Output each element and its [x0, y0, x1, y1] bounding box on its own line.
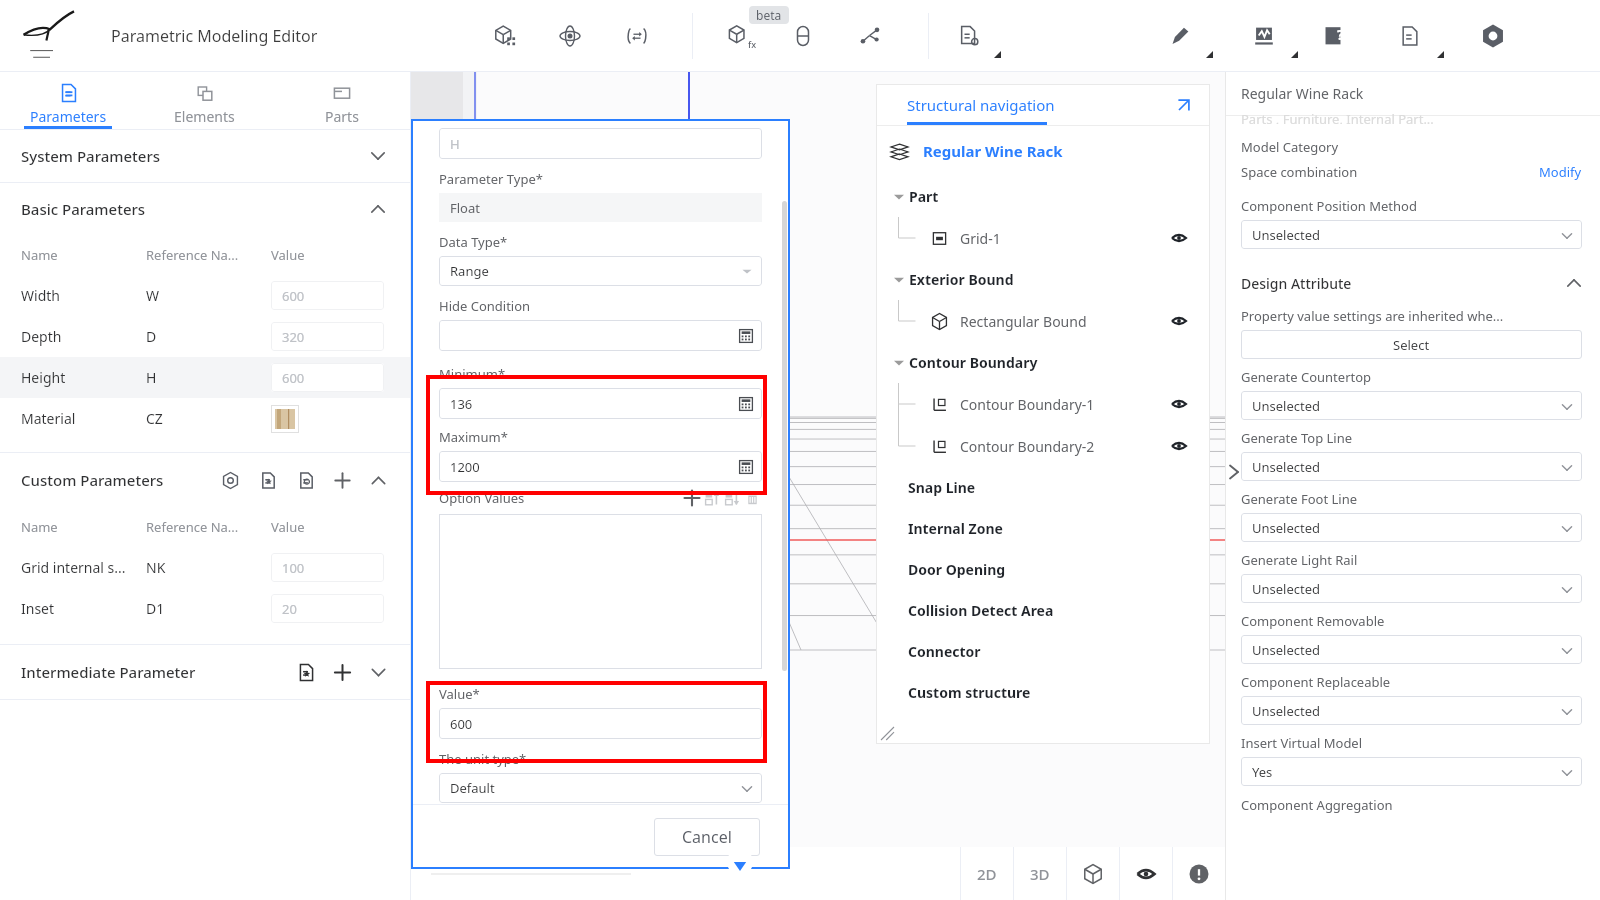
staticText: Parametric Modeling Editor — [111, 25, 318, 47]
button[interactable]: 600 — [271, 281, 384, 310]
button[interactable]: Move down — [722, 488, 742, 508]
button[interactable]: Unselected — [1241, 574, 1582, 603]
button[interactable]: Connector — [876, 631, 1210, 672]
button[interactable]: Parts — [273, 72, 410, 129]
button[interactable]: Add option — [682, 488, 702, 508]
staticText: Name — [21, 518, 146, 536]
button[interactable]: Add — [329, 659, 355, 685]
button[interactable]: Yes — [1241, 757, 1582, 786]
staticText: ? — [1337, 25, 1344, 44]
button[interactable]: Link — [785, 18, 821, 54]
button[interactable]: Depth — [0, 316, 410, 357]
button[interactable]: Grid-1 — [876, 217, 1210, 259]
button[interactable]: 100 — [271, 553, 384, 582]
button[interactable]: Elements — [136, 72, 273, 129]
button[interactable]: Exterior Bound — [876, 259, 1210, 300]
button[interactable]: Unselected — [1241, 220, 1582, 249]
button[interactable]: Model — [1067, 847, 1119, 900]
button[interactable]: 600 — [271, 363, 384, 392]
button[interactable]: Contour Boundary — [876, 342, 1210, 383]
button[interactable]: Width — [0, 275, 410, 316]
button[interactable]: Unselected — [1241, 391, 1582, 420]
button[interactable]: Custom structure — [876, 672, 1210, 713]
button[interactable]: Collapse — [365, 467, 391, 493]
button[interactable]: Default — [439, 773, 762, 803]
button[interactable]: Add star parameter — [255, 467, 281, 493]
button[interactable]: Graph — [852, 18, 888, 54]
button[interactable]: Unselected — [1241, 696, 1582, 725]
button[interactable]: Analytics — [1246, 18, 1282, 54]
button[interactable]: Material — [0, 398, 410, 439]
button[interactable]: 600 — [439, 708, 762, 739]
button[interactable]: Design Attribute — [1225, 267, 1600, 299]
button[interactable]: 20 — [271, 594, 384, 623]
staticText: Value — [271, 246, 305, 264]
button[interactable]: Expand panel — [1172, 94, 1194, 116]
button[interactable]: Height — [0, 357, 410, 398]
button[interactable]: System Parameters — [0, 130, 410, 182]
button[interactable]: Parameters — [0, 72, 136, 129]
button[interactable]: Rectangular Bound — [876, 300, 1210, 342]
button[interactable]: Cancel — [654, 818, 760, 856]
staticText: Option Values — [439, 489, 525, 507]
button[interactable]: Unselected — [1241, 513, 1582, 542]
button[interactable]: Swap — [619, 18, 655, 54]
button[interactable]: Warnings — [1173, 847, 1225, 900]
button[interactable]: Modify — [1539, 163, 1582, 181]
button[interactable]: H — [439, 128, 762, 159]
staticText: Name — [21, 246, 146, 264]
button[interactable]: Unselected — [1241, 452, 1582, 481]
button[interactable]: 136 — [439, 388, 762, 419]
button[interactable]: Delete — [742, 488, 762, 508]
staticText: Component Aggregation — [1241, 796, 1393, 814]
button[interactable]: Help — [1315, 18, 1351, 54]
button[interactable]: Add star parameter — [293, 659, 319, 685]
button[interactable]: Document settings — [951, 18, 987, 54]
button[interactable]: Target — [217, 467, 243, 493]
button[interactable]: Inset — [0, 588, 410, 629]
button[interactable]: Unselected — [1241, 635, 1582, 664]
button[interactable]: Toggle visibility — [1168, 310, 1190, 332]
button[interactable]: Visibility — [1120, 847, 1172, 900]
button[interactable]: Collapse panel — [1225, 449, 1243, 495]
button[interactable]: Report — [1392, 18, 1428, 54]
staticText: Component Position Method — [1241, 197, 1417, 215]
button[interactable]: Internal Zone — [876, 508, 1210, 549]
button[interactable]: Toggle visibility — [1168, 435, 1190, 457]
button[interactable]: Contour Boundary-2 — [876, 425, 1210, 467]
button[interactable]: Settings — [1475, 18, 1511, 54]
button[interactable]: Collision Detect Area — [876, 590, 1210, 631]
button[interactable]: Regular Wine Rack — [876, 126, 1210, 176]
button[interactable]: Move up — [702, 488, 722, 508]
button[interactable]: Assembly — [487, 18, 523, 54]
button[interactable]: Grid internal s... — [0, 547, 410, 588]
staticText: Space combination — [1241, 163, 1358, 181]
button[interactable]: Range — [439, 256, 762, 286]
staticText: Maximum* — [439, 428, 508, 446]
button[interactable]: Expand — [365, 659, 391, 685]
button[interactable]: Door Opening — [876, 549, 1210, 590]
button[interactable] — [439, 320, 762, 351]
button[interactable]: 320 — [271, 322, 384, 351]
button[interactable]: 2D — [961, 847, 1013, 900]
button[interactable]: Basic Parameters — [0, 183, 410, 235]
button[interactable]: Formula — [720, 18, 756, 54]
button[interactable]: Part — [876, 176, 1210, 217]
button[interactable]: Add — [329, 467, 355, 493]
staticText: Internal Zone — [908, 519, 1003, 538]
staticText: Depth — [21, 327, 146, 346]
button[interactable]: 3D — [1014, 847, 1066, 900]
button[interactable]: Toggle visibility — [1168, 393, 1190, 415]
button[interactable]: Snap Line — [876, 467, 1210, 508]
button[interactable]: Edit — [1162, 18, 1198, 54]
staticText: H — [146, 368, 271, 387]
button[interactable]: Select — [1241, 330, 1582, 359]
staticText: Yes — [1252, 763, 1273, 781]
staticText: D1 — [146, 599, 271, 618]
button[interactable]: Add circle parameter — [293, 467, 319, 493]
button[interactable]: 1200 — [439, 451, 762, 482]
staticText: 136 — [450, 395, 473, 413]
button[interactable]: Toggle visibility — [1168, 227, 1190, 249]
button[interactable]: Contour Boundary-1 — [876, 383, 1210, 425]
button[interactable]: Molecule — [552, 18, 588, 54]
